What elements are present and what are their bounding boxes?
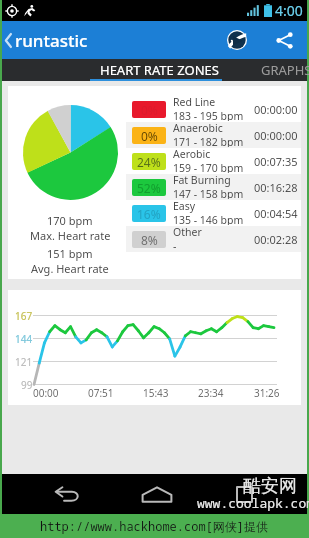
staticText: 135 - 146 bpm <box>173 213 244 225</box>
staticText: 170 bpm <box>47 213 93 228</box>
staticText: 酷安网 <box>243 475 297 498</box>
staticText: 15:43 <box>143 386 169 400</box>
staticText: 00:02:28 <box>254 232 298 247</box>
button[interactable]: HEART RATE ZONES <box>90 59 222 81</box>
staticText: HEART RATE ZONES <box>100 61 219 79</box>
staticText: 24% <box>137 154 161 170</box>
staticText: Other <box>173 225 202 239</box>
staticText: 31:26 <box>254 386 280 400</box>
button[interactable]: 16% <box>126 200 301 226</box>
button[interactable]: Share <box>265 21 303 59</box>
button[interactable]: 8% <box>126 226 301 252</box>
staticText: 147 - 158 bpm <box>173 187 244 199</box>
staticText: runtastic <box>15 29 88 52</box>
staticText: 00:00:00 <box>254 102 298 117</box>
staticText: 183 - 195 bpm <box>173 109 244 121</box>
staticText: 159 - 170 bpm <box>173 161 244 173</box>
staticText: 8% <box>141 232 158 248</box>
staticText: 167 <box>15 309 33 323</box>
staticText: 07:51 <box>88 386 114 400</box>
staticText: 171 - 182 bpm <box>173 135 244 147</box>
staticText: 4:00 <box>275 1 303 20</box>
staticText: Aerobic <box>173 147 211 161</box>
staticText: 23:34 <box>198 386 224 400</box>
staticText: Fat Burning <box>173 173 231 187</box>
button[interactable]: runtastic <box>2 21 96 59</box>
staticText: http://www.hackhome.com[网侠]提供 <box>40 518 269 534</box>
staticText: 52% <box>137 180 161 196</box>
staticText: 99 <box>21 378 33 392</box>
button[interactable]: Live tracking <box>218 21 256 59</box>
staticText: 00:16:28 <box>254 180 298 195</box>
staticText: - <box>173 239 177 251</box>
staticText: 151 bpm <box>47 246 93 261</box>
staticText: 00:04:54 <box>254 206 298 221</box>
staticText: 00:00 <box>33 386 59 400</box>
staticText: 121 <box>15 355 33 369</box>
button[interactable]: Recent apps <box>220 474 268 514</box>
button[interactable]: 0% <box>126 122 301 148</box>
staticText: Easy <box>173 199 196 213</box>
staticText: GRAPHS <box>261 61 309 79</box>
staticText: 144 <box>15 332 33 346</box>
button[interactable]: 52% <box>126 174 301 200</box>
staticText: Max. Heart rate <box>30 228 111 243</box>
staticText: www.coolapk.com <box>197 494 309 512</box>
staticText: 16% <box>137 206 161 222</box>
button[interactable]: 24% <box>126 148 301 174</box>
button[interactable]: Back <box>44 474 92 514</box>
staticText: Avg. Heart rate <box>31 261 109 276</box>
staticText: Anaerobic <box>173 121 223 135</box>
staticText: Red Line <box>173 95 216 109</box>
button[interactable]: Home <box>133 474 181 514</box>
staticText: 0% <box>141 128 158 144</box>
staticText: 0% <box>141 102 158 118</box>
button[interactable]: 0% <box>126 96 301 122</box>
button[interactable]: GRAPHS <box>220 59 309 81</box>
staticText: 00:07:35 <box>254 154 298 169</box>
staticText: 00:00:00 <box>254 128 298 143</box>
